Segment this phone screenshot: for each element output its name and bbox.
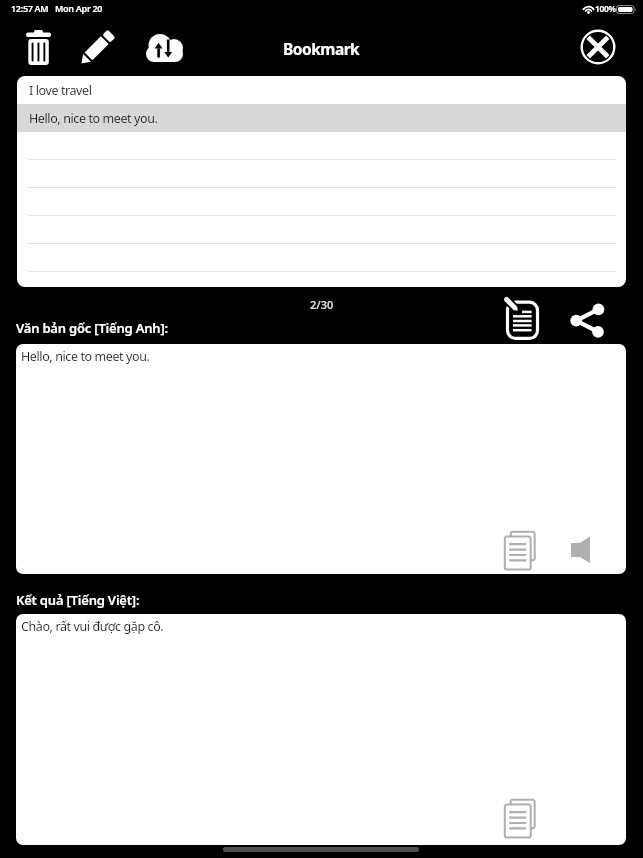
button[interactable]: [22, 28, 55, 68]
staticText: 100%: [595, 3, 616, 15]
staticText: Văn bản gốc [Tiếng Anh]:: [16, 319, 168, 337]
staticText: Mon Apr 20: [55, 2, 103, 14]
button[interactable]: [504, 531, 537, 571]
staticText: 12:57 AM: [11, 2, 49, 14]
staticText: 2/30: [310, 297, 334, 312]
button[interactable]: Hello, nice to meet you.: [17, 104, 626, 132]
button[interactable]: [145, 33, 188, 65]
button[interactable]: I love travel: [17, 76, 626, 104]
staticText: Chào, rất vui được gặp cô.: [21, 618, 164, 635]
button[interactable]: [566, 298, 608, 338]
button[interactable]: [504, 799, 537, 839]
button[interactable]: [502, 296, 542, 342]
button[interactable]: [580, 29, 616, 65]
staticText: Hello, nice to meet you.: [29, 110, 158, 127]
button[interactable]: [570, 536, 591, 564]
button[interactable]: [77, 29, 117, 67]
staticText: Kết quả [Tiếng Việt]:: [16, 591, 140, 609]
staticText: I love travel: [29, 82, 92, 99]
staticText: Hello, nice to meet you.: [21, 348, 150, 365]
staticText: Bookmark: [283, 38, 360, 59]
